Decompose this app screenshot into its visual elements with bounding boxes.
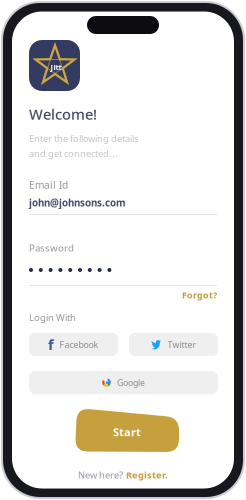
button[interactable]: Register. xyxy=(126,469,168,481)
button[interactable]: Google xyxy=(29,371,218,394)
staticText: Facebook xyxy=(59,338,98,350)
button[interactable]: Forgot? xyxy=(182,289,217,301)
button[interactable]: Start xyxy=(75,408,179,452)
staticText: and get connected... xyxy=(29,147,118,160)
staticText: Jitt xyxy=(50,62,61,72)
staticText: Email Id xyxy=(29,178,68,192)
staticText: Google xyxy=(117,376,145,388)
staticText: Login With xyxy=(29,311,76,324)
staticText: Twitter xyxy=(167,338,196,350)
staticText: Password xyxy=(29,241,74,254)
staticText: Welcome! xyxy=(29,104,97,124)
button[interactable]: f xyxy=(29,333,118,356)
staticText: Forgot? xyxy=(182,289,217,301)
button[interactable]: Twitter xyxy=(129,333,218,356)
staticText: john@johnsons.com xyxy=(29,196,126,209)
staticText: Start xyxy=(113,424,141,440)
staticText: Enter the following details xyxy=(29,132,138,145)
staticText: Register. xyxy=(126,469,168,481)
staticText: f xyxy=(48,334,54,354)
staticText: New here? xyxy=(78,469,123,481)
